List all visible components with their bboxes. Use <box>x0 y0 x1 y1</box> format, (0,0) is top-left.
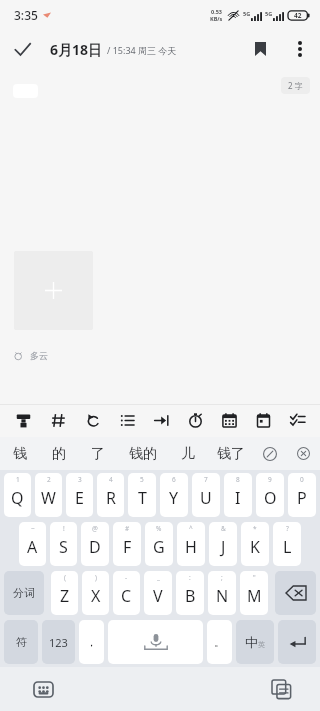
button[interactable]: * <box>241 522 269 566</box>
staticText: 多云 <box>30 350 48 361</box>
staticText: G <box>153 536 165 558</box>
button[interactable]: 分词 <box>4 571 44 615</box>
button[interactable]: Clipboard <box>266 674 296 704</box>
button[interactable]: ? <box>273 522 301 566</box>
staticText: 英 <box>258 640 265 649</box>
staticText: C <box>121 585 132 607</box>
button[interactable]: Highlight <box>6 404 41 437</box>
staticText: J <box>221 536 226 558</box>
staticText: 5 <box>140 475 144 484</box>
staticText: : <box>189 573 191 582</box>
button[interactable]: 中 <box>236 620 274 664</box>
button[interactable]: Close candidates <box>286 437 320 470</box>
staticText: 123 <box>49 635 68 650</box>
button[interactable]: Calendar <box>212 404 246 437</box>
button[interactable]: 5 <box>128 473 156 517</box>
button[interactable]: 3 <box>66 473 93 517</box>
button[interactable]: Switch keyboard <box>28 674 58 704</box>
staticText: D <box>89 536 101 558</box>
staticText: 分词 <box>13 586 35 600</box>
button[interactable]: Undo <box>76 404 110 437</box>
button[interactable]: 123 <box>42 620 75 664</box>
staticText: 儿 <box>181 445 195 463</box>
button[interactable]: ^ <box>177 522 205 566</box>
button[interactable]: 儿 <box>168 437 208 470</box>
staticText: H <box>185 536 197 558</box>
button[interactable]: ， <box>79 620 104 664</box>
staticText: 符 <box>16 635 27 649</box>
button[interactable]: Backspace <box>275 571 316 615</box>
button[interactable]: Indent <box>144 404 178 437</box>
button[interactable]: @ <box>81 522 109 566</box>
button[interactable]: 1 <box>4 473 31 517</box>
staticText: 6月18日 <box>50 40 103 59</box>
button[interactable]: 的 <box>39 437 78 470</box>
button[interactable]: Tag <box>41 404 76 437</box>
staticText: 5G <box>265 10 273 17</box>
button[interactable]: 。 <box>207 620 232 664</box>
staticText: Q <box>11 487 24 509</box>
button[interactable]: ; <box>208 571 236 615</box>
button[interactable]: Space, voice input <box>108 620 203 664</box>
staticText: 8 <box>236 475 240 484</box>
button[interactable]: Bookmark <box>240 30 280 68</box>
staticText: ( <box>64 573 66 582</box>
button[interactable]: 8 <box>224 473 252 517</box>
staticText: I <box>235 487 241 509</box>
staticText: 3:35 <box>14 7 38 23</box>
button[interactable]: Done <box>0 30 44 68</box>
button[interactable]: Enter <box>278 620 316 664</box>
button[interactable]: 7 <box>192 473 220 517</box>
staticText: S <box>59 536 68 558</box>
button[interactable]: 2 <box>35 473 62 517</box>
button[interactable]: ! <box>50 522 77 566</box>
button[interactable]: ) <box>82 571 109 615</box>
staticText: 了 <box>91 445 105 463</box>
button[interactable]: & <box>209 522 237 566</box>
button[interactable]: Attachment <box>254 437 286 470</box>
button[interactable]: 钱了 <box>208 437 254 470</box>
button[interactable]: 4 <box>97 473 124 517</box>
button[interactable]: Checklist <box>280 404 314 437</box>
staticText: A <box>27 536 38 558</box>
button[interactable]: ~ <box>19 522 46 566</box>
staticText: W <box>41 487 56 509</box>
staticText: 42 <box>294 11 302 20</box>
button[interactable]: 了 <box>78 437 118 470</box>
staticText: O <box>264 487 277 509</box>
button[interactable]: 钱 <box>0 437 39 470</box>
staticText: / 15:34 周三 今天 <box>107 44 177 56</box>
staticText: T <box>138 487 147 509</box>
staticText: ; <box>221 573 223 582</box>
button[interactable]: # <box>113 522 141 566</box>
staticText: 钱的 <box>129 445 157 463</box>
button[interactable]: _ <box>144 571 172 615</box>
button[interactable]: Bullet list <box>110 404 144 437</box>
staticText: 6 <box>172 475 176 484</box>
staticText: F <box>123 536 132 558</box>
staticText: 9 <box>268 475 272 484</box>
button[interactable]: " <box>240 571 268 615</box>
button[interactable]: % <box>145 522 173 566</box>
button[interactable]: More options <box>280 30 320 68</box>
button[interactable]: 符 <box>4 620 38 664</box>
button[interactable]: : <box>176 571 204 615</box>
staticText: 2 字 <box>288 80 303 91</box>
button[interactable]: 钱的 <box>118 437 168 470</box>
staticText: ^ <box>189 524 193 533</box>
staticText: 1 <box>16 475 20 484</box>
button[interactable]: - <box>113 571 140 615</box>
button[interactable]: Date <box>246 404 280 437</box>
button[interactable]: ( <box>51 571 78 615</box>
staticText: - <box>125 573 128 582</box>
staticText: P <box>297 487 307 509</box>
button[interactable]: 2 字 <box>281 77 310 94</box>
button[interactable]: 9 <box>256 473 284 517</box>
staticText: U <box>200 487 212 509</box>
button[interactable]: Timer <box>178 404 212 437</box>
staticText: ~ <box>31 524 35 533</box>
button[interactable]: 0 <box>288 473 316 517</box>
button[interactable]: 6 <box>160 473 188 517</box>
staticText: 钱了 <box>217 445 245 463</box>
